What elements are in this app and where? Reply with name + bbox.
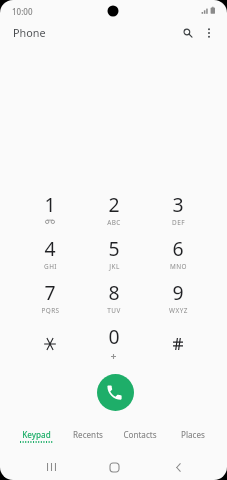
button[interactable]: Call <box>97 374 134 411</box>
staticText: 9 <box>172 279 184 303</box>
staticText: 1 <box>44 191 56 215</box>
button[interactable]: Search <box>176 21 200 45</box>
staticText: PQRS <box>41 306 60 315</box>
staticText: 2 <box>108 191 120 215</box>
staticText: 5 <box>108 235 120 259</box>
button[interactable] <box>88 230 140 270</box>
staticText: 0 <box>108 323 120 347</box>
staticText: 7 <box>44 279 56 303</box>
button[interactable] <box>24 318 76 358</box>
button[interactable] <box>152 187 204 227</box>
staticText: WXYZ <box>169 306 188 315</box>
button[interactable] <box>88 274 140 314</box>
button[interactable] <box>24 274 76 314</box>
staticText: Recents <box>73 429 103 440</box>
button[interactable]: Places <box>167 424 219 448</box>
button[interactable] <box>152 230 204 270</box>
button[interactable]: Recent apps <box>20 454 83 480</box>
staticText: 8 <box>108 279 120 303</box>
button[interactable]: Keypad <box>10 424 62 448</box>
button[interactable] <box>152 274 204 314</box>
staticText: 10:00 <box>12 6 33 17</box>
button[interactable]: Home <box>83 454 145 480</box>
button[interactable] <box>152 318 204 358</box>
staticText: TUV <box>107 306 121 315</box>
staticText: 3 <box>172 191 184 215</box>
staticText: JKL <box>109 262 120 271</box>
staticText: ABC <box>107 218 121 227</box>
staticText: Keypad <box>22 429 51 440</box>
staticText: Phone <box>13 25 46 40</box>
staticText: MNO <box>170 262 187 271</box>
button[interactable]: Recents <box>62 424 114 448</box>
staticText: GHI <box>44 262 57 271</box>
button[interactable]: Contacts <box>114 424 166 448</box>
staticText: 6 <box>172 235 184 259</box>
staticText: Places <box>181 429 205 440</box>
staticText: Contacts <box>123 429 157 440</box>
button[interactable]: More options <box>197 21 221 45</box>
staticText: 4 <box>44 235 56 259</box>
staticText: DEF <box>172 218 185 227</box>
button[interactable] <box>24 187 76 227</box>
button[interactable] <box>88 318 140 358</box>
button[interactable]: Back <box>145 454 207 480</box>
button[interactable] <box>88 187 140 227</box>
button[interactable] <box>24 230 76 270</box>
